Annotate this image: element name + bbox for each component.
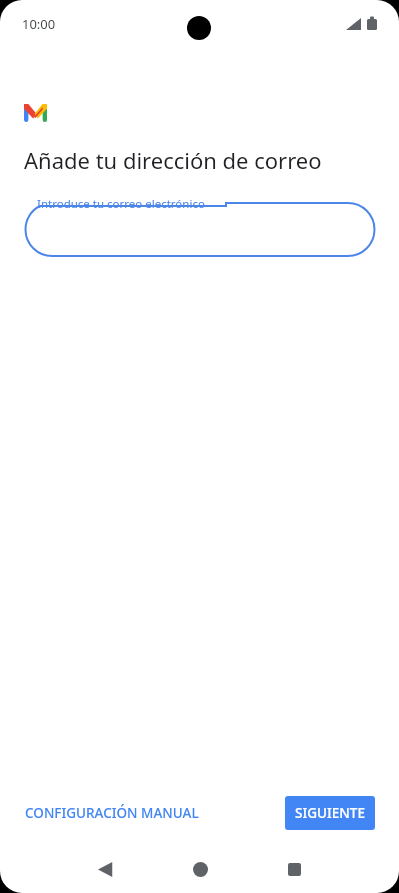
staticText: SIGUIENTE [295,804,365,822]
button[interactable]: SIGUIENTE [285,796,375,830]
staticText: CONFIGURACIÓN MANUAL [25,804,199,822]
staticText: 10:00 [22,15,56,33]
button[interactable]: Introduce tu correo electrónico [24,196,376,260]
staticText: Introduce tu correo electrónico [37,196,205,212]
button[interactable]: CONFIGURACIÓN MANUAL [17,798,207,828]
button[interactable]: Home [180,849,220,889]
button[interactable]: Recent apps [274,849,314,889]
button[interactable]: Back [85,849,125,889]
staticText: Añade tu dirección de correo [24,145,322,175]
